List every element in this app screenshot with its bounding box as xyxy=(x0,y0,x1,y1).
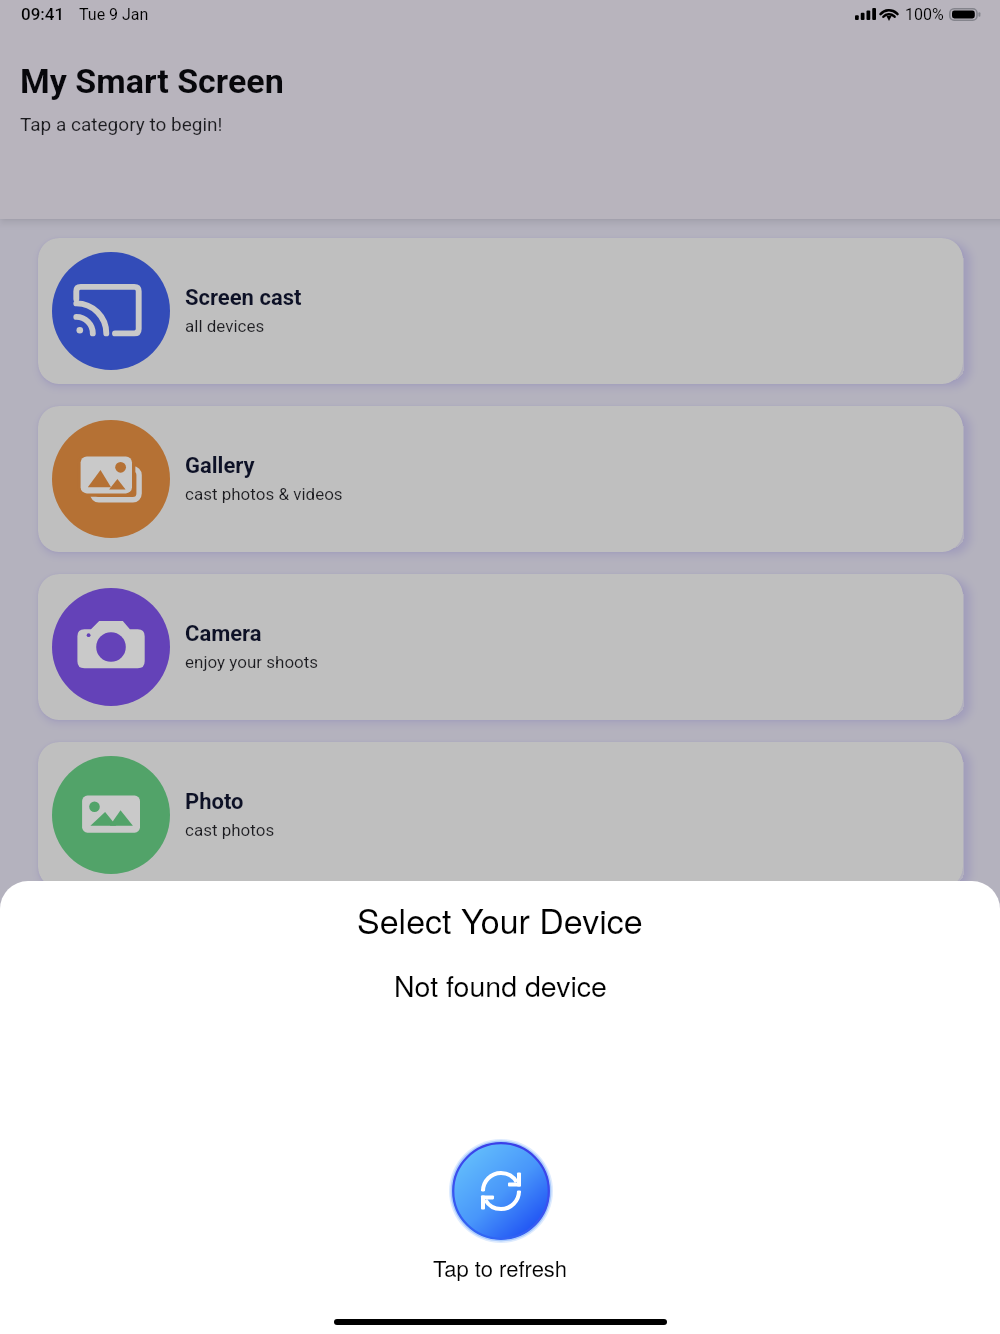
staticText: Camera xyxy=(185,621,262,647)
button[interactable]: Photo xyxy=(38,742,963,888)
staticText: Select Your Device xyxy=(357,895,643,944)
staticText: cast photos & videos xyxy=(185,484,343,504)
staticText: 100% xyxy=(905,5,944,24)
staticText: cast photos xyxy=(185,820,275,840)
staticText: Tue 9 Jan xyxy=(79,5,149,24)
button[interactable]: Camera xyxy=(38,574,963,720)
staticText: Not found device xyxy=(394,964,607,1005)
staticText: 09:41 xyxy=(21,4,65,24)
staticText: enjoy your shoots xyxy=(185,652,319,672)
staticText: Screen cast xyxy=(185,285,302,311)
staticText: Photo xyxy=(185,789,244,815)
staticText: Tap a category to begin! xyxy=(20,113,223,135)
staticText: My Smart Screen xyxy=(20,61,284,101)
staticText: Gallery xyxy=(185,453,255,479)
button[interactable]: Gallery xyxy=(38,406,963,552)
button[interactable]: Screen cast xyxy=(38,238,963,384)
staticText: Tap to refresh xyxy=(433,1252,568,1284)
button[interactable]: Refresh xyxy=(449,1139,553,1243)
staticText: all devices xyxy=(185,316,265,336)
